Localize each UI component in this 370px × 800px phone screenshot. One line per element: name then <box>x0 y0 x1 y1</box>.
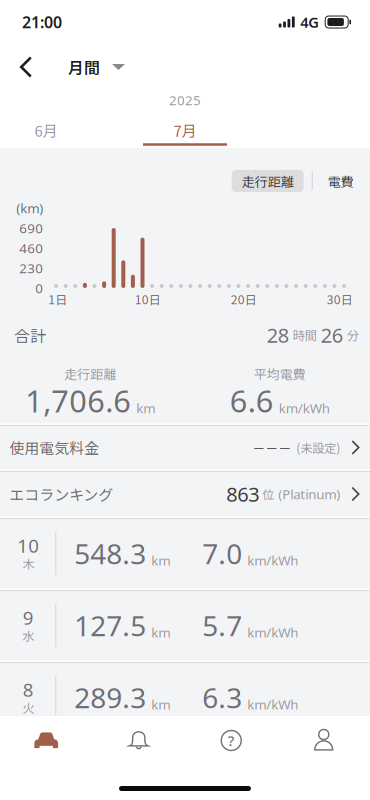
staticText: 460 <box>19 239 43 257</box>
button[interactable]: 走行距離 <box>232 170 304 192</box>
staticText: 使用電気料金 <box>9 437 99 458</box>
button[interactable]: 6月 <box>0 112 88 146</box>
button[interactable]: 月間 <box>52 44 135 90</box>
staticText: 6.3 <box>202 679 242 716</box>
staticText: 863 <box>226 481 259 507</box>
staticText: 10日 <box>135 290 161 308</box>
staticText: 21:00 <box>22 11 62 33</box>
button[interactable]: 7月 <box>143 112 227 146</box>
staticText: km <box>136 399 155 417</box>
staticText: 28 <box>267 322 289 348</box>
staticText: 月間 <box>68 55 100 78</box>
staticText: －－－ <box>252 438 291 457</box>
staticText: 690 <box>19 219 43 237</box>
staticText: (km) <box>16 199 43 217</box>
staticText: 分 <box>347 326 359 344</box>
button[interactable]: Back <box>0 44 52 90</box>
button[interactable]: Help <box>185 715 277 765</box>
staticText: 位 <box>262 485 274 503</box>
staticText: km <box>151 695 170 713</box>
button[interactable]: 電費 <box>313 170 358 192</box>
staticText: km <box>151 623 170 641</box>
staticText: ? <box>228 731 235 750</box>
staticText: 127.5 <box>74 607 146 644</box>
staticText: 4G <box>300 12 319 32</box>
staticText: 289.3 <box>74 679 146 716</box>
staticText: 9 <box>23 605 34 630</box>
staticText: 木 <box>22 555 34 572</box>
button[interactable]: エコランキング <box>0 472 370 516</box>
staticText: 7.0 <box>202 535 242 572</box>
staticText: (Platinum) <box>278 485 340 503</box>
staticText: エコランキング <box>9 483 113 505</box>
staticText: 走行距離 <box>242 171 294 190</box>
staticText: 548.3 <box>74 535 146 572</box>
staticText: 5.7 <box>202 607 242 644</box>
button[interactable]: 9 <box>0 591 370 660</box>
button[interactable]: 8 <box>0 663 370 732</box>
staticText: 時間 <box>293 326 317 344</box>
staticText: 走行距離 <box>64 364 116 383</box>
staticText: 合計 <box>14 323 46 346</box>
staticText: 1,706.6 <box>25 380 131 421</box>
button[interactable]: 使用電気料金 <box>0 426 370 469</box>
staticText: 7月 <box>173 119 196 141</box>
staticText: 230 <box>19 259 43 277</box>
staticText: (未設定) <box>296 439 340 456</box>
staticText: 0 <box>35 279 43 297</box>
button[interactable]: 10 <box>0 519 370 588</box>
staticText: 30日 <box>327 290 353 308</box>
staticText: km <box>151 551 170 569</box>
staticText: km/kWh <box>279 399 330 417</box>
staticText: 電費 <box>328 171 354 190</box>
button[interactable]: Notifications <box>92 715 185 765</box>
staticText: 8 <box>23 677 34 702</box>
staticText: 20日 <box>231 290 257 308</box>
staticText: 26 <box>321 322 343 348</box>
staticText: km/kWh <box>247 551 298 569</box>
staticText: km/kWh <box>247 695 298 713</box>
staticText: 水 <box>22 627 34 644</box>
staticText: 10 <box>17 533 39 558</box>
staticText: 6月 <box>34 119 57 141</box>
staticText: 平均電費 <box>254 364 306 383</box>
staticText: 火 <box>22 699 34 716</box>
button[interactable]: Account <box>277 715 370 765</box>
staticText: 1日 <box>48 290 67 308</box>
staticText: 6.6 <box>230 380 274 421</box>
staticText: km/kWh <box>247 623 298 641</box>
button[interactable]: Vehicle <box>0 715 92 765</box>
staticText: 2025 <box>169 91 201 109</box>
